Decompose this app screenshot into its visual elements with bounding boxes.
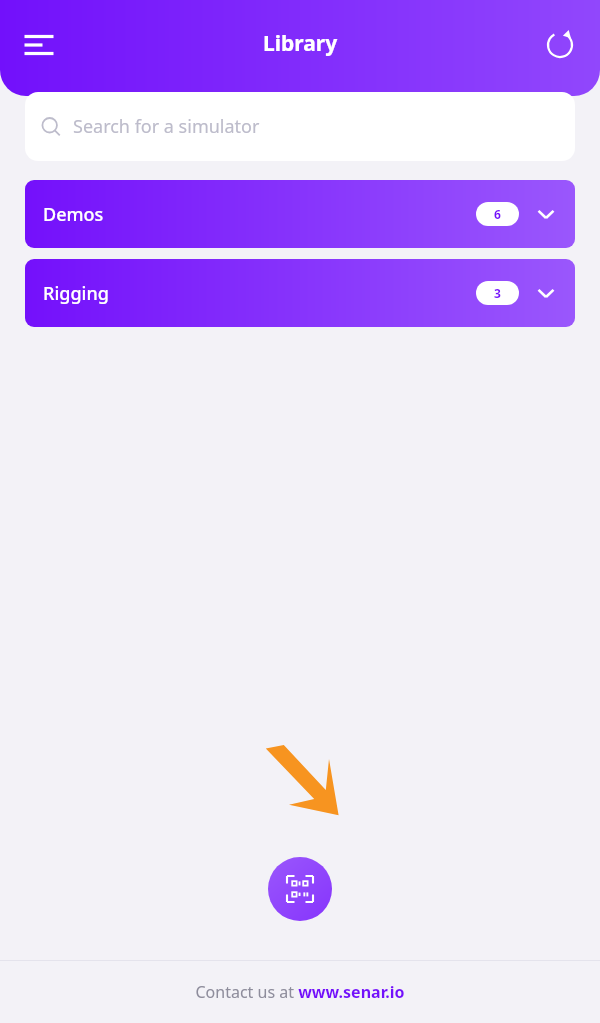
staticText: Rigging bbox=[43, 281, 109, 306]
staticText: 3 bbox=[494, 285, 501, 301]
staticText: Demos bbox=[43, 202, 104, 227]
staticText: Library bbox=[263, 29, 338, 58]
button[interactable]: Menu bbox=[12, 18, 66, 72]
staticText: Contact us at www.senar.io bbox=[195, 981, 405, 1003]
staticText: Search for a simulator bbox=[73, 114, 260, 139]
button[interactable]: Demos bbox=[25, 180, 575, 248]
button[interactable]: Refresh bbox=[532, 16, 588, 72]
button[interactable]: Search for a simulator bbox=[25, 92, 575, 161]
staticText: 6 bbox=[494, 206, 501, 222]
button[interactable]: Scan QR code bbox=[268, 857, 332, 921]
button[interactable]: Rigging bbox=[25, 259, 575, 327]
